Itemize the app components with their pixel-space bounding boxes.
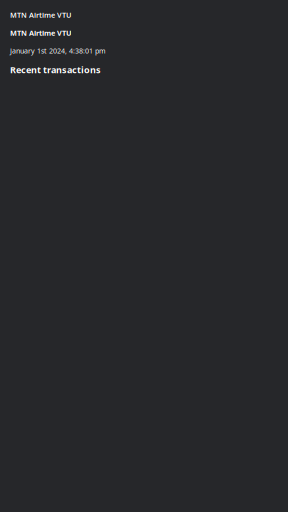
- staticText: MTN Airtime VTU: [10, 28, 72, 38]
- staticText: Recent transactions: [10, 64, 101, 76]
- staticText: January 1st 2024, 4:38:01 pm: [10, 46, 106, 56]
- staticText: MTN Airtime VTU: [10, 10, 71, 20]
